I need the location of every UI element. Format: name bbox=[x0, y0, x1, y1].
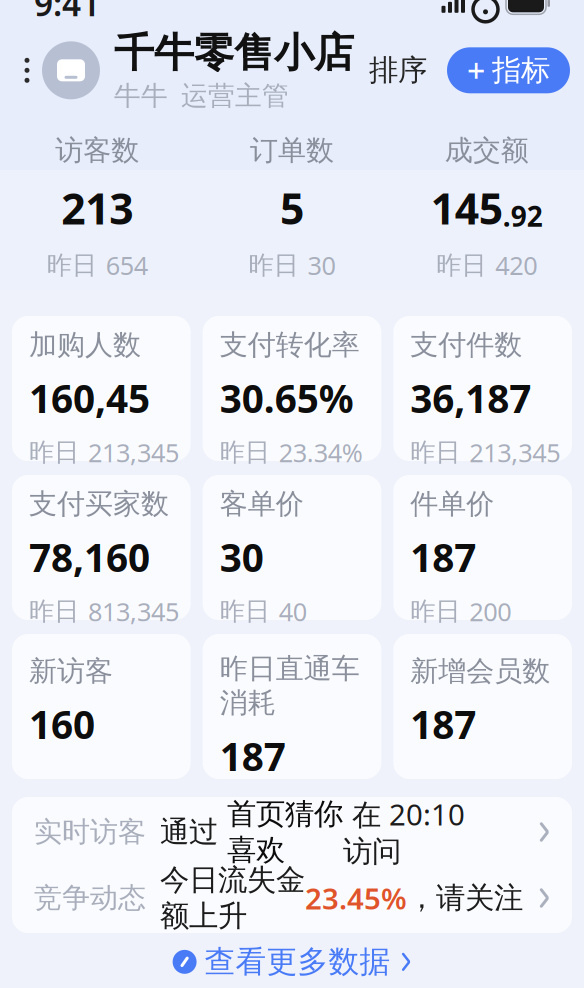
staticText: 昨日 bbox=[248, 250, 298, 281]
staticText: 成交额 bbox=[445, 133, 529, 168]
button[interactable]: 客单价 bbox=[203, 475, 381, 620]
staticText: 187 bbox=[410, 531, 476, 582]
staticText: 通过 bbox=[160, 814, 227, 850]
staticText: 213 bbox=[61, 180, 133, 236]
staticText: 支付买家数 bbox=[29, 487, 169, 521]
staticText: 支付件数 bbox=[410, 328, 522, 362]
button[interactable]: More options bbox=[14, 40, 40, 100]
staticText: 运营主管 bbox=[181, 79, 289, 112]
staticText: 654 bbox=[106, 248, 148, 282]
staticText: 187 bbox=[220, 730, 286, 781]
button[interactable]: 新增会员数 bbox=[393, 634, 572, 779]
staticText: 昨日 bbox=[47, 250, 97, 281]
staticText: 昨日 bbox=[220, 437, 270, 468]
staticText: 新增会员数 bbox=[410, 654, 550, 688]
staticText: 实时访客 bbox=[34, 815, 146, 849]
staticText: + bbox=[467, 49, 485, 92]
staticText: 213,345 bbox=[469, 436, 560, 469]
staticText: 在 20:10 访问 bbox=[343, 794, 465, 869]
staticText: 昨日直通车消耗 bbox=[220, 651, 360, 720]
staticText: 新访客 bbox=[29, 654, 113, 688]
staticText: 排序 bbox=[369, 52, 427, 88]
button[interactable]: 实时访客 bbox=[12, 799, 572, 865]
staticText: 813,345 bbox=[88, 595, 179, 628]
button[interactable]: 加购人数 bbox=[12, 316, 191, 461]
staticText: 30 bbox=[220, 531, 264, 582]
staticText: 今日流失金额上升 bbox=[160, 862, 305, 934]
button[interactable]: 排序 bbox=[363, 42, 433, 98]
staticText: 36,187 bbox=[410, 372, 531, 423]
staticText: 支付转化率 bbox=[220, 328, 360, 362]
staticText: 昨日 bbox=[220, 596, 270, 627]
button[interactable]: 支付买家数 bbox=[12, 475, 191, 620]
staticText: 昨日 bbox=[410, 437, 460, 468]
staticText: 昨日 bbox=[436, 250, 486, 281]
staticText: 30.65% bbox=[220, 372, 354, 423]
staticText: 件单价 bbox=[410, 487, 494, 521]
staticText: 200 bbox=[469, 595, 511, 628]
staticText: .92 bbox=[503, 197, 543, 234]
staticText: 查看更多数据 bbox=[205, 943, 391, 981]
staticText: 加购人数 bbox=[29, 328, 141, 362]
staticText: 昨日 bbox=[29, 437, 79, 468]
staticText: 160,45 bbox=[29, 372, 150, 423]
staticText: 23.34% bbox=[279, 436, 363, 469]
staticText: 千牛零售小店 bbox=[114, 28, 354, 77]
button[interactable]: 昨日直通车消耗 bbox=[203, 634, 381, 779]
staticText: 昨日 bbox=[29, 596, 79, 627]
button[interactable]: 新访客 bbox=[12, 634, 191, 779]
button[interactable]: 查看更多数据 bbox=[155, 933, 429, 988]
staticText: 订单数 bbox=[250, 133, 334, 168]
button[interactable]: 件单价 bbox=[393, 475, 572, 620]
staticText: 78,160 bbox=[29, 531, 150, 582]
staticText: 昨日 bbox=[410, 596, 460, 627]
staticText: 420 bbox=[495, 248, 537, 282]
staticText: 牛牛 bbox=[114, 79, 168, 112]
button[interactable]: + bbox=[447, 47, 570, 93]
staticText: 145 bbox=[431, 180, 503, 236]
staticText: 指标 bbox=[492, 52, 550, 88]
staticText: 竞争动态 bbox=[34, 881, 146, 915]
staticText: 9:41 bbox=[34, 0, 100, 25]
staticText: 客单价 bbox=[220, 487, 304, 521]
staticText: 187 bbox=[410, 698, 476, 750]
staticText: 30 bbox=[307, 248, 335, 282]
staticText: 23.45% bbox=[305, 878, 407, 917]
staticText: 213,345 bbox=[88, 436, 179, 469]
staticText: 160 bbox=[29, 698, 95, 750]
staticText: 访客数 bbox=[55, 133, 139, 168]
button[interactable]: 竞争动态 bbox=[12, 865, 572, 931]
staticText: ，请关注 bbox=[407, 880, 523, 916]
button[interactable]: 支付转化率 bbox=[203, 316, 381, 461]
staticText: 5 bbox=[280, 180, 304, 236]
button[interactable]: 支付件数 bbox=[393, 316, 572, 461]
staticText: 40 bbox=[279, 595, 307, 628]
staticText: 首页猜你喜欢 bbox=[227, 796, 343, 868]
